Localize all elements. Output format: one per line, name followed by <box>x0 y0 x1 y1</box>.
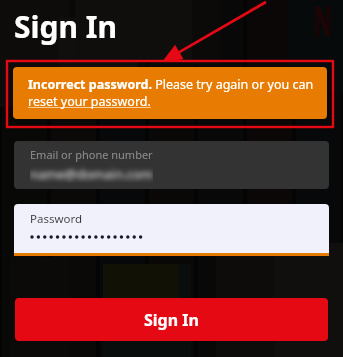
button[interactable]: Sign In <box>15 298 328 341</box>
staticText: Incorrect password. Please try again or … <box>28 76 315 110</box>
staticText: Sign In <box>144 309 199 331</box>
staticText: Sign In <box>14 6 117 47</box>
other: Annotation arrow pointing at error messa… <box>0 0 343 357</box>
button[interactable]: Incorrect password. Please try again or … <box>13 67 327 119</box>
staticText: name@domain.com <box>30 165 153 183</box>
button[interactable]: Email or phone number <box>14 141 329 189</box>
button[interactable]: Password <box>14 204 329 253</box>
staticText: Password <box>30 211 83 227</box>
staticText: Email or phone number <box>30 147 153 162</box>
